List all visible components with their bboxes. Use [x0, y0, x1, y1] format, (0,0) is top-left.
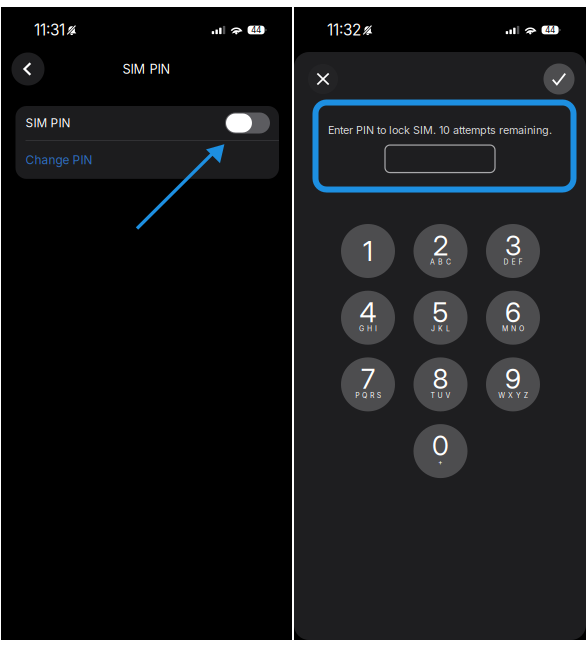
staticText: Y: [516, 391, 521, 400]
staticText: Q: [362, 391, 367, 400]
button[interactable]: 1: [341, 224, 395, 278]
staticText: 4: [359, 296, 376, 329]
staticText: SIM PIN: [25, 116, 70, 130]
staticText: 8: [432, 362, 448, 395]
staticText: A: [430, 258, 435, 266]
staticText: T: [431, 391, 435, 400]
staticText: C: [446, 258, 451, 266]
staticText: F: [518, 258, 522, 266]
staticText: I: [375, 324, 377, 333]
staticText: SIM PIN: [122, 61, 170, 77]
staticText: 7: [361, 362, 375, 395]
staticText: M: [502, 324, 508, 333]
staticText: 2: [433, 229, 448, 262]
button[interactable]: 0: [413, 424, 467, 478]
button[interactable]: Cancel: [308, 64, 338, 94]
staticText: 1: [363, 234, 373, 268]
staticText: B: [438, 258, 443, 266]
staticText: E: [511, 258, 515, 266]
staticText: 11:32: [327, 21, 361, 39]
staticText: 3: [505, 229, 521, 262]
staticText: K: [438, 324, 443, 333]
staticText: Z: [524, 391, 528, 400]
button[interactable]: 5: [413, 291, 467, 345]
staticText: J: [431, 324, 435, 333]
staticText: X: [508, 391, 513, 400]
staticText: Change PIN: [25, 153, 92, 167]
staticText: 11:31: [34, 21, 65, 39]
staticText: W: [498, 391, 505, 400]
staticText: 5: [432, 296, 448, 329]
button[interactable]: Change PIN: [15, 141, 279, 179]
staticText: V: [445, 391, 450, 400]
staticText: O: [519, 324, 524, 333]
button[interactable]: Confirm: [543, 63, 574, 94]
staticText: +: [438, 458, 443, 466]
button[interactable]: Back: [11, 52, 44, 85]
staticText: R: [370, 391, 374, 400]
button[interactable]: 7: [341, 357, 395, 411]
staticText: G: [359, 324, 364, 333]
staticText: 6: [505, 296, 521, 329]
staticText: P: [355, 391, 359, 400]
button[interactable]: 4: [341, 291, 395, 345]
staticText: U: [437, 391, 442, 400]
staticText: N: [511, 324, 516, 333]
staticText: S: [377, 391, 381, 400]
button[interactable]: 8: [413, 357, 467, 411]
staticText: L: [446, 324, 450, 333]
staticText: 44: [545, 25, 555, 35]
button[interactable]: 9: [486, 357, 540, 411]
staticText: H: [367, 324, 372, 333]
staticText: 44: [251, 25, 261, 35]
staticText: 0: [432, 429, 449, 462]
staticText: D: [504, 258, 509, 266]
staticText: Enter PIN to lock SIM. 10 attempts remai…: [328, 123, 552, 137]
staticText: 9: [505, 362, 521, 395]
button[interactable]: 3: [486, 224, 540, 278]
button[interactable]: SIM PIN: [15, 106, 279, 140]
button[interactable]: 6: [486, 291, 540, 345]
button[interactable]: 2: [413, 224, 467, 278]
